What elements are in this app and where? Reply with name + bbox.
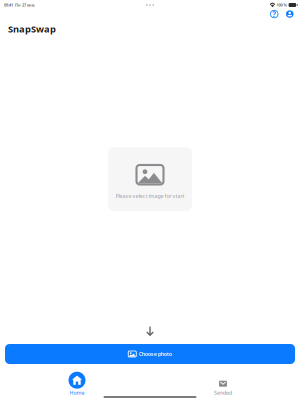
staticText: 100 % [276,2,287,8]
staticText: 09:41 Пн 27 янв. [4,2,35,8]
staticText: Please select image for start [115,192,184,200]
button[interactable]: Sended [198,372,248,396]
button[interactable]: Choose photo [5,344,295,364]
button[interactable]: Home [52,372,102,396]
staticText: SnapSwap [8,23,56,35]
staticText: Sended [214,389,232,396]
staticText: Home [69,389,84,396]
button[interactable]: Account [286,10,293,18]
button[interactable]: Help [270,10,278,18]
staticText: Choose photo [139,350,172,358]
staticText: ? [272,9,276,19]
